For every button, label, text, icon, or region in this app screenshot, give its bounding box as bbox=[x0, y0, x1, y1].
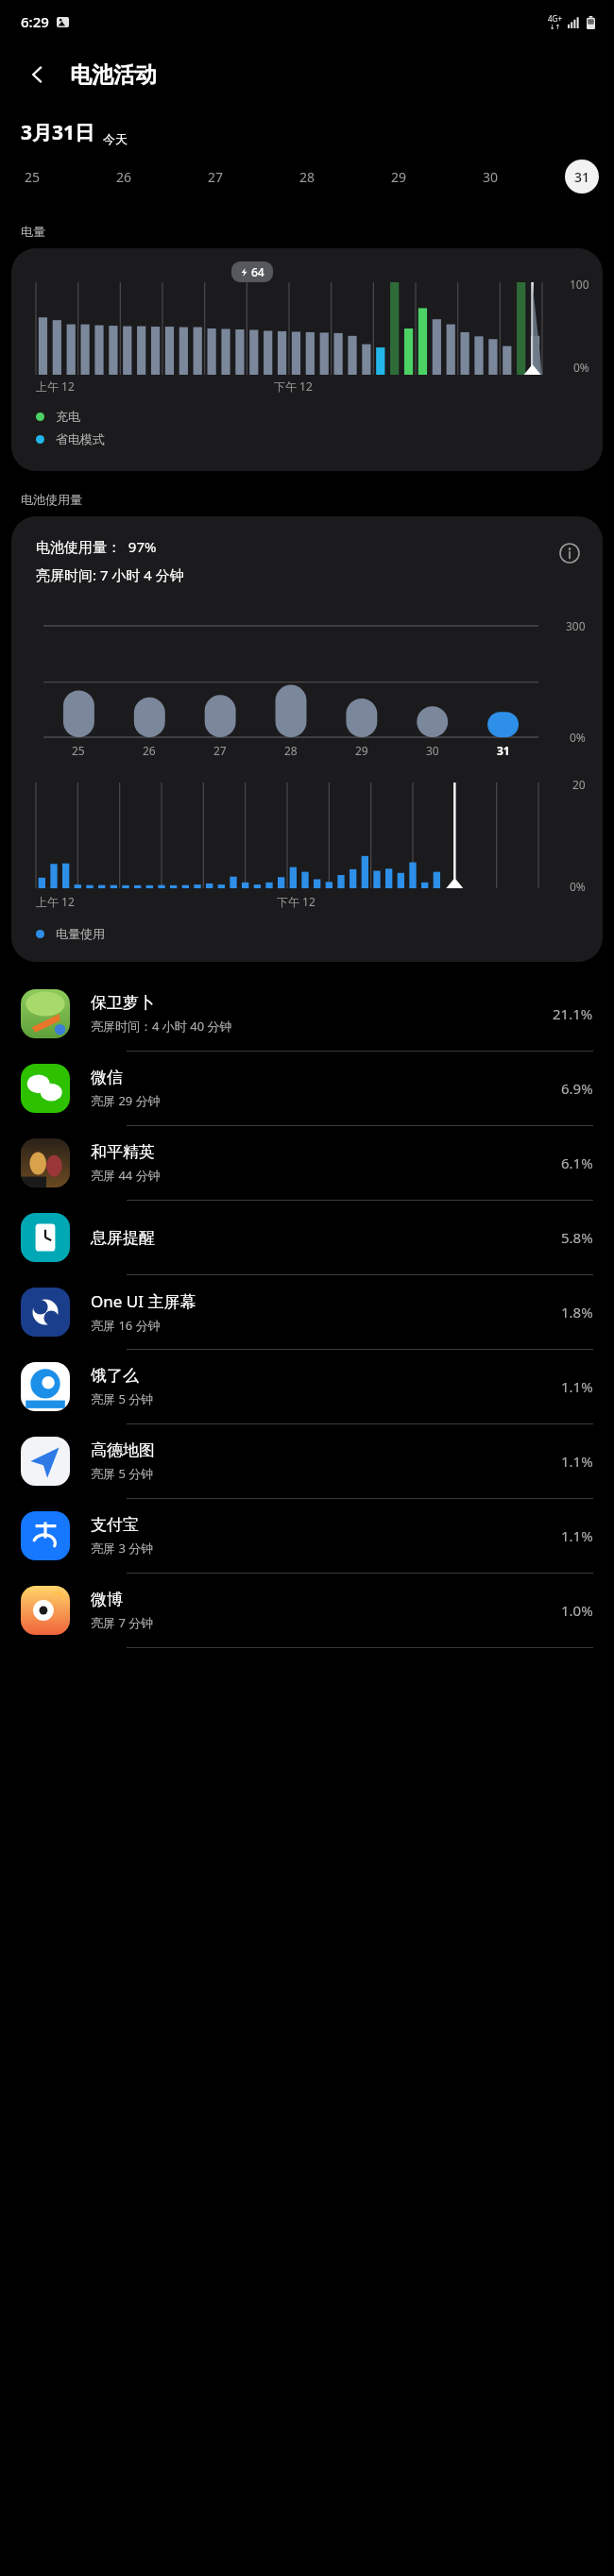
staticText: 64 bbox=[251, 264, 264, 279]
staticText: 1.0% bbox=[561, 1601, 593, 1620]
staticText: 亮屏 5 分钟 bbox=[91, 1465, 154, 1482]
button[interactable]: 饿了么 bbox=[0, 1350, 614, 1423]
button[interactable]: Information bbox=[554, 537, 586, 569]
staticText: 电池使用量 bbox=[21, 492, 82, 507]
staticText: 25 bbox=[72, 743, 85, 758]
staticText: 保卫萝卜 bbox=[91, 993, 155, 1013]
staticText: One UI 主屏幕 bbox=[91, 1290, 196, 1312]
staticText: 25 bbox=[25, 168, 41, 186]
staticText: 和平精英 bbox=[91, 1142, 155, 1162]
staticText: 21.1% bbox=[553, 1004, 593, 1023]
staticText: 今天 bbox=[103, 131, 128, 146]
staticText: 30 bbox=[483, 168, 499, 186]
button[interactable]: 28 bbox=[290, 160, 324, 194]
staticText: 电量使用 bbox=[56, 926, 105, 941]
button[interactable]: 高德地图 bbox=[0, 1424, 614, 1498]
button[interactable]: 26 bbox=[107, 160, 141, 194]
staticText: 高德地图 bbox=[91, 1440, 155, 1460]
staticText: 30 bbox=[426, 743, 439, 758]
staticText: ↓↑ bbox=[550, 24, 561, 31]
staticText: 上午 12 bbox=[36, 379, 75, 394]
staticText: 亮屏 5 分钟 bbox=[91, 1390, 154, 1407]
staticText: 6:29 bbox=[21, 12, 49, 31]
button[interactable]: 微博 bbox=[0, 1574, 614, 1647]
staticText: 0% bbox=[573, 360, 589, 375]
staticText: 28 bbox=[284, 743, 298, 758]
staticText: 亮屏时间：4 小时 40 分钟 bbox=[91, 1018, 232, 1035]
staticText: 息屏提醒 bbox=[91, 1228, 155, 1248]
staticText: 1.1% bbox=[561, 1452, 593, 1471]
staticText: 26 bbox=[143, 743, 156, 758]
staticText: 26 bbox=[116, 168, 132, 186]
staticText: 亮屏 3 分钟 bbox=[91, 1540, 154, 1557]
button[interactable]: Back bbox=[17, 54, 59, 95]
staticText: 3月31日 bbox=[21, 119, 95, 146]
staticText: 微信 bbox=[91, 1068, 123, 1087]
staticText: 亮屏时间: 7 小时 4 分钟 bbox=[36, 565, 184, 584]
staticText: 亮屏 29 分钟 bbox=[91, 1092, 161, 1109]
staticText: 1.1% bbox=[561, 1526, 593, 1545]
staticText: 29 bbox=[391, 168, 407, 186]
staticText: 300 bbox=[566, 618, 586, 633]
button[interactable]: 支付宝 bbox=[0, 1499, 614, 1573]
button[interactable]: 息屏提醒 bbox=[0, 1201, 614, 1274]
staticText: 下午 12 bbox=[277, 894, 316, 909]
button[interactable]: 保卫萝卜 bbox=[0, 977, 614, 1051]
staticText: 电量 bbox=[21, 224, 45, 239]
staticText: 1.8% bbox=[561, 1303, 593, 1322]
staticText: 支付宝 bbox=[91, 1515, 139, 1535]
staticText: 27 bbox=[208, 168, 224, 186]
staticText: 下午 12 bbox=[274, 379, 313, 394]
staticText: 5.8% bbox=[561, 1228, 593, 1247]
staticText: 6.1% bbox=[561, 1153, 593, 1172]
staticText: 31 bbox=[497, 743, 510, 758]
staticText: 微博 bbox=[91, 1590, 123, 1609]
button[interactable]: 30 bbox=[473, 160, 507, 194]
button[interactable]: 100 bbox=[11, 248, 603, 471]
button[interactable]: 29 bbox=[382, 160, 416, 194]
staticText: 上午 12 bbox=[36, 894, 75, 909]
button[interactable]: 和平精英 bbox=[0, 1126, 614, 1200]
staticText: 27 bbox=[213, 743, 227, 758]
button[interactable]: One UI 主屏幕 bbox=[0, 1275, 614, 1349]
staticText: 29 bbox=[355, 743, 368, 758]
staticText: 亮屏 16 分钟 bbox=[91, 1317, 161, 1334]
button[interactable]: 31 bbox=[565, 160, 599, 194]
button[interactable]: 27 bbox=[198, 160, 232, 194]
staticText: 100 bbox=[570, 277, 589, 292]
staticText: 电池使用量： 97% bbox=[36, 537, 157, 556]
staticText: 1.1% bbox=[561, 1377, 593, 1396]
staticText: 电池活动 bbox=[70, 61, 157, 89]
staticText: 0% bbox=[570, 730, 586, 745]
staticText: 0% bbox=[570, 879, 586, 894]
staticText: 省电模式 bbox=[56, 431, 105, 446]
button[interactable]: 25 bbox=[15, 160, 49, 194]
staticText: 4G+ bbox=[548, 13, 562, 24]
staticText: 亮屏 7 分钟 bbox=[91, 1614, 154, 1631]
staticText: 6.9% bbox=[561, 1079, 593, 1098]
staticText: 饿了么 bbox=[91, 1366, 139, 1386]
staticText: 31 bbox=[574, 168, 590, 186]
staticText: 亮屏 44 分钟 bbox=[91, 1167, 161, 1184]
staticText: 20 bbox=[572, 777, 586, 792]
button[interactable]: 微信 bbox=[0, 1052, 614, 1125]
staticText: 28 bbox=[299, 168, 316, 186]
staticText: 充电 bbox=[56, 409, 80, 424]
